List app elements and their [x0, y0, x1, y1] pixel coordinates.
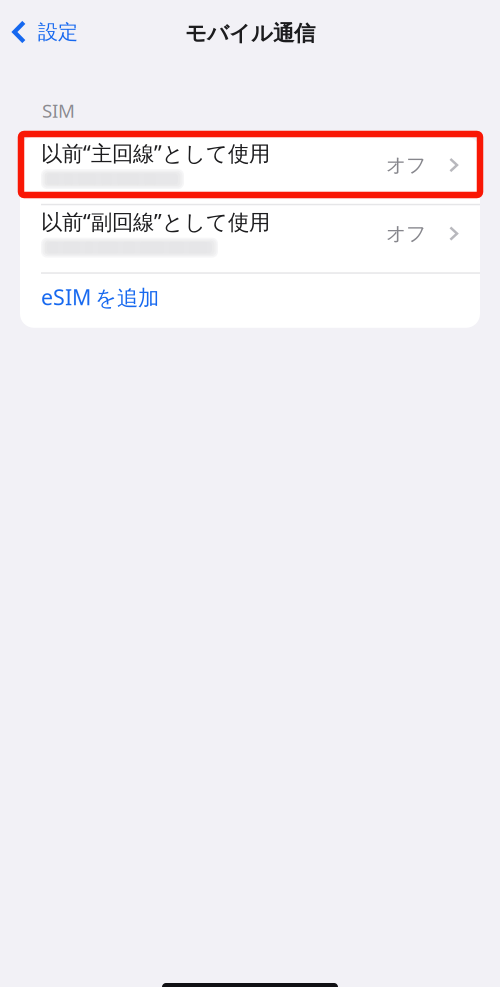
button[interactable]: 以前“副回線”として使用	[20, 205, 480, 272]
staticText: オフ	[386, 221, 426, 246]
staticText: 以前“主回線”として使用	[41, 139, 270, 167]
staticText: 設定	[38, 20, 78, 44]
staticText: オフ	[386, 153, 426, 177]
staticText: SIM	[42, 98, 75, 123]
staticText: eSIM を追加	[41, 283, 159, 311]
staticText: モバイル通信	[185, 20, 315, 47]
staticText: 以前“副回線”として使用	[41, 207, 270, 236]
button[interactable]: 設定に戻る	[0, 10, 78, 54]
button[interactable]: eSIM を追加	[20, 274, 480, 328]
button[interactable]: 以前“主回線”として使用	[20, 137, 480, 204]
